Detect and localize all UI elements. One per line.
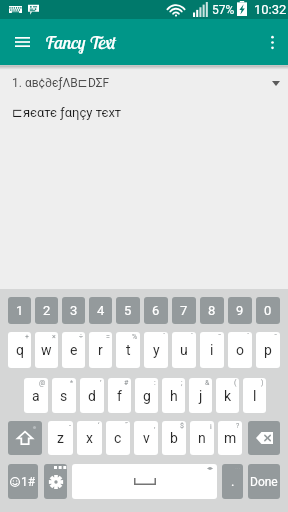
button[interactable]: .	[222, 464, 243, 499]
staticText: p	[264, 342, 272, 358]
staticText: &	[205, 379, 210, 387]
staticText: ˜	[274, 333, 278, 341]
staticText: .	[231, 474, 235, 489]
staticText: l	[253, 388, 257, 404]
button[interactable]: 6	[144, 297, 168, 324]
button[interactable]: Settings	[44, 464, 67, 499]
button[interactable]: b	[162, 421, 186, 455]
staticText: Done	[250, 475, 278, 489]
button[interactable]: f	[108, 378, 131, 413]
staticText: d	[88, 388, 96, 404]
staticText: $	[180, 422, 184, 430]
button[interactable]: q	[8, 332, 31, 368]
button[interactable]: y	[144, 332, 168, 368]
staticText: ´	[163, 333, 166, 341]
button[interactable]: 3	[62, 297, 85, 324]
button[interactable]: m	[218, 421, 242, 455]
staticText: 3	[70, 303, 78, 318]
staticText: g	[143, 388, 151, 404]
staticText: ‘	[98, 422, 100, 430]
button[interactable]: 4	[89, 297, 112, 324]
button[interactable]: c	[106, 421, 130, 455]
button[interactable]: 8	[200, 297, 224, 324]
staticText: =	[106, 333, 110, 341]
staticText: v	[143, 430, 150, 446]
staticText: ÷	[79, 333, 83, 341]
staticText: ◂▸	[207, 464, 214, 471]
staticText: 1	[16, 303, 24, 318]
staticText: 5	[124, 303, 132, 318]
staticText: j	[199, 388, 203, 404]
button[interactable]: v	[134, 421, 158, 455]
button[interactable]: 1. αв¢∂єƒΛB⊏DΣF	[0, 69, 288, 97]
button[interactable]: o	[228, 332, 252, 368]
staticText: b	[170, 430, 178, 446]
staticText: @	[39, 379, 46, 387]
staticText: (	[234, 379, 237, 387]
staticText: *	[70, 379, 74, 387]
staticText: m	[224, 430, 237, 446]
button[interactable]: s	[52, 378, 76, 413]
button[interactable]: r	[89, 332, 112, 368]
staticText: 10:32	[254, 2, 287, 17]
button[interactable]: d	[80, 378, 104, 413]
staticText: ?	[236, 422, 240, 430]
staticText: +	[25, 333, 29, 341]
button[interactable]: p	[256, 332, 280, 368]
staticText: 4	[97, 303, 105, 318]
button[interactable]: Done	[248, 464, 280, 499]
staticText: `	[191, 333, 194, 341]
button[interactable]: u	[172, 332, 196, 368]
button[interactable]: 7	[172, 297, 196, 324]
button[interactable]: n	[190, 421, 214, 455]
button[interactable]: 5	[116, 297, 140, 324]
staticText: e	[70, 342, 78, 358]
button[interactable]: l	[243, 378, 266, 413]
staticText: ’	[100, 379, 102, 387]
staticText: u	[180, 342, 188, 358]
button[interactable]: k	[216, 378, 239, 413]
button[interactable]: z	[48, 421, 73, 455]
staticText: 9	[236, 303, 244, 318]
button[interactable]: Space	[72, 464, 217, 499]
staticText: 0	[264, 303, 272, 318]
staticText: h	[170, 388, 178, 404]
staticText: 1. αв¢∂єƒΛB⊏DΣF	[12, 76, 110, 90]
button[interactable]: j	[189, 378, 212, 413]
staticText: ⊏яєαтє ƒαηçу тєхт	[12, 105, 122, 120]
button[interactable]: 2	[35, 297, 58, 324]
staticText: x	[86, 430, 93, 446]
button[interactable]: g	[135, 378, 158, 413]
staticText: ¡	[210, 422, 212, 430]
button[interactable]: Navigation menu	[0, 19, 45, 65]
staticText: ×	[52, 333, 56, 341]
staticText: 8	[208, 303, 216, 318]
button[interactable]: More options	[256, 19, 288, 65]
button[interactable]: w	[35, 332, 58, 368]
staticText: y	[153, 342, 160, 358]
staticText: c	[114, 430, 122, 446]
staticText: 7	[180, 303, 188, 318]
button[interactable]: e	[62, 332, 85, 368]
staticText: Fancy Text	[45, 31, 116, 54]
button[interactable]: t	[116, 332, 140, 368]
staticText: z	[57, 430, 64, 446]
staticText: -	[69, 422, 71, 430]
staticText: #	[124, 379, 129, 387]
staticText: ˝	[125, 422, 128, 430]
button[interactable]: Symbols and emoji	[8, 464, 38, 499]
button[interactable]: i	[200, 332, 224, 368]
staticText: ¯	[218, 333, 222, 341]
button[interactable]: 1	[8, 297, 31, 324]
button[interactable]: h	[162, 378, 185, 413]
staticText: ;	[181, 379, 183, 387]
button[interactable]: 9	[228, 297, 252, 324]
button[interactable]: Backspace	[248, 421, 280, 455]
staticText: k	[224, 388, 232, 404]
button[interactable]: Shift	[8, 421, 42, 455]
button[interactable]: 0	[256, 297, 280, 324]
button[interactable]: a	[24, 378, 48, 413]
staticText: w	[41, 342, 52, 358]
button[interactable]: x	[77, 421, 102, 455]
